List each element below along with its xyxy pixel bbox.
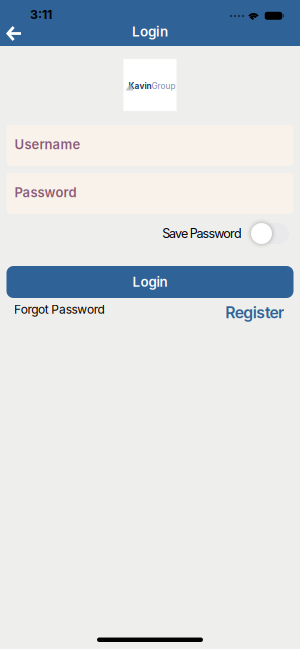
staticText: Login	[132, 274, 167, 290]
staticText: Login	[132, 23, 168, 40]
staticText: Save Password	[162, 226, 242, 241]
button[interactable]: Username	[6, 125, 293, 166]
staticText: Group	[151, 81, 175, 91]
button[interactable]: Forgot Password	[14, 302, 104, 316]
button[interactable]: Login	[6, 266, 293, 298]
staticText: 3:11	[30, 7, 52, 22]
staticText: Password	[14, 185, 76, 200]
button[interactable]: Save Password	[251, 223, 289, 244]
button[interactable]: Back	[0, 0, 30, 46]
button[interactable]: Password	[6, 173, 293, 214]
staticText: Username	[14, 137, 80, 152]
staticText: Forgot Password	[14, 302, 104, 316]
button[interactable]: Register	[225, 302, 284, 321]
staticText: Register	[225, 303, 284, 322]
staticText: Kavin	[128, 81, 151, 91]
